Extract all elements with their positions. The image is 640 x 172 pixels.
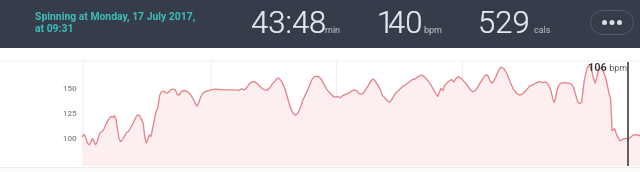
staticText: 125	[63, 109, 77, 118]
button[interactable]: More options	[590, 10, 634, 35]
staticText: Spinning at Monday, 17 July 2017,	[35, 10, 196, 22]
staticText: min	[325, 25, 341, 36]
staticText: 150	[63, 84, 77, 93]
staticText: bpm	[424, 25, 442, 36]
staticText: at 09:31	[35, 22, 74, 34]
staticText: 529	[478, 4, 530, 40]
staticText: 100	[63, 134, 77, 143]
staticText: 43:48	[251, 4, 327, 40]
staticText: 106	[588, 61, 607, 74]
staticText: 1	[377, 4, 395, 40]
staticText: 40	[388, 4, 423, 40]
staticText: bpm	[607, 63, 628, 74]
staticText: cals	[534, 25, 551, 36]
